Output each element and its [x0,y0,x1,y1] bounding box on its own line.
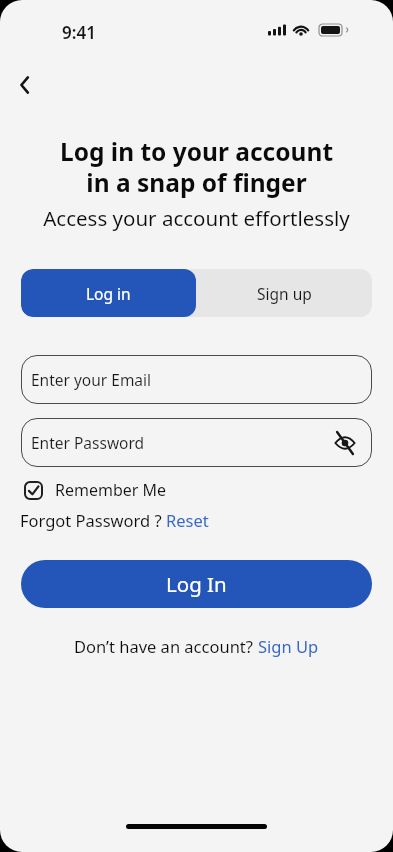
staticText: Log in to your account in a snap of fing… [0,135,393,200]
staticText: Log In [166,570,227,598]
staticText: Forgot Password ? [20,509,166,531]
button[interactable]: Reset [166,509,209,531]
staticText: Sign up [257,283,312,304]
button[interactable]: Remember Me [24,479,167,501]
staticText: Enter Password [31,432,145,453]
button[interactable]: Enter your Email [21,355,372,404]
staticText: Enter your Email [31,369,152,390]
button[interactable]: Enter Password [21,418,372,467]
button[interactable]: Sign up [196,269,372,317]
staticText: Access your account effortlessly [0,204,393,232]
button[interactable]: Log In [21,560,372,608]
staticText: Log in [86,283,131,304]
staticText: Remember Me [55,479,167,501]
button[interactable]: Log in [21,269,196,317]
button[interactable] [12,72,38,98]
button[interactable]: Sign Up [258,635,319,657]
staticText: 9:41 [62,21,96,39]
staticText: Don’t have an account? [74,635,258,657]
